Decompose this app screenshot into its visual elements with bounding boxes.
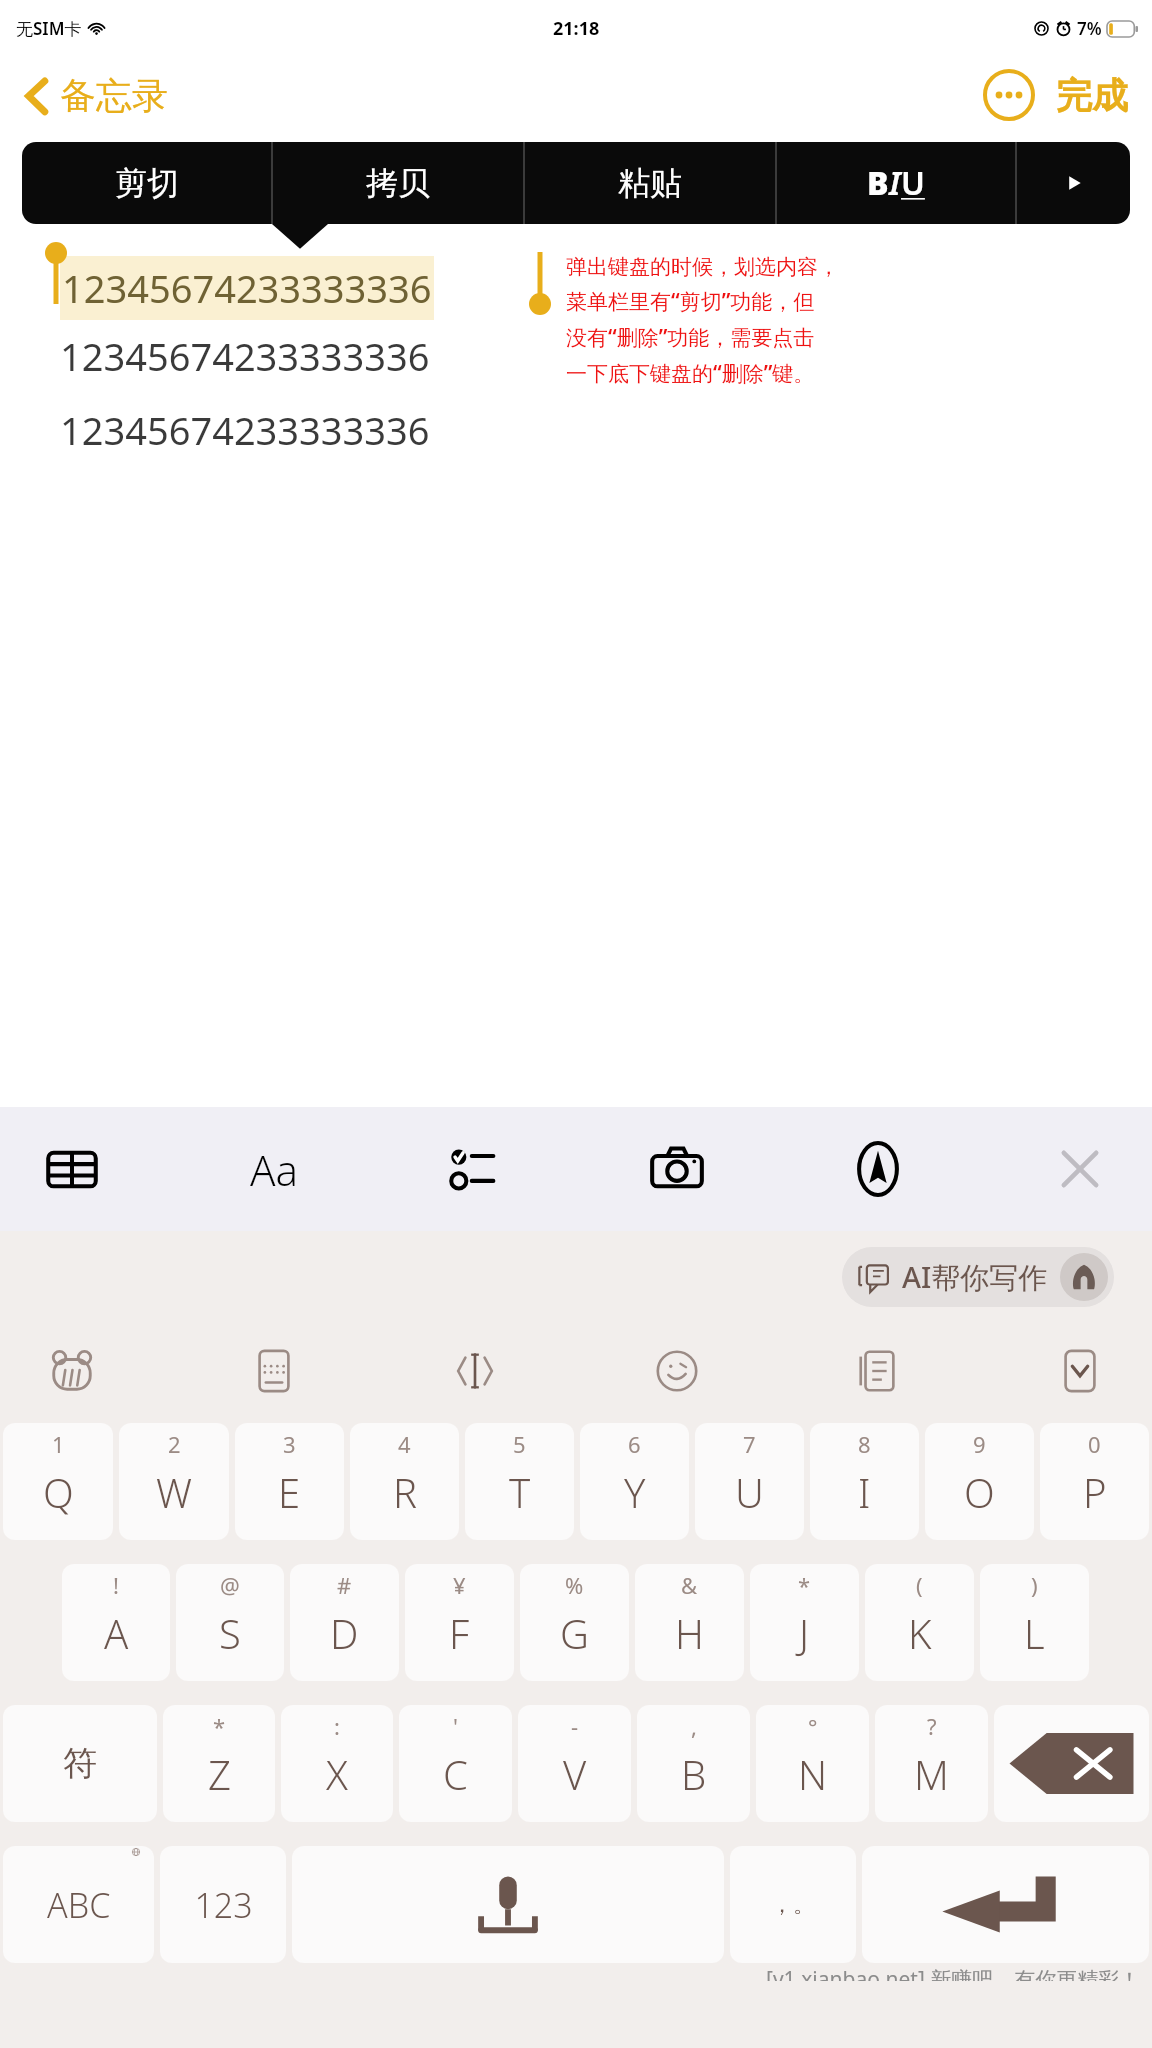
button[interactable]: Clipboard	[846, 1339, 910, 1403]
button[interactable]: Backspace	[994, 1705, 1149, 1822]
button[interactable]: More options	[980, 66, 1038, 124]
button[interactable]: %	[520, 1564, 629, 1681]
staticText: E	[278, 1465, 301, 1519]
staticText: 剪切	[115, 163, 179, 203]
button[interactable]: '	[399, 1705, 512, 1822]
staticText: 拷贝	[366, 163, 430, 203]
button[interactable]: ABC	[3, 1846, 154, 1963]
button[interactable]: More actions	[1017, 142, 1130, 224]
button[interactable]: 4	[350, 1423, 459, 1540]
staticText: 7	[743, 1429, 756, 1459]
staticText: U	[735, 1465, 764, 1519]
button[interactable]: 7	[695, 1423, 804, 1540]
staticText: 12345674233333336	[60, 330, 430, 382]
button[interactable]: 3	[235, 1423, 344, 1540]
staticText: *	[213, 1711, 226, 1741]
button[interactable]: Close	[1044, 1133, 1116, 1205]
button[interactable]: Camera	[641, 1133, 713, 1205]
button[interactable]: Move cursor	[443, 1339, 507, 1403]
staticText: 符	[63, 1742, 97, 1785]
staticText: 3	[283, 1429, 296, 1459]
staticText: 12345674233333336	[60, 404, 430, 456]
staticText: ABC	[47, 1882, 111, 1928]
button[interactable]: 符	[3, 1705, 157, 1822]
button[interactable]: Table	[36, 1133, 108, 1205]
button[interactable]: *	[163, 1705, 275, 1822]
staticText: %	[565, 1570, 584, 1600]
button[interactable]: ,	[637, 1705, 750, 1822]
staticText: B	[867, 161, 889, 205]
staticText: 弹出键盘的时候，划选内容，	[566, 254, 839, 280]
button[interactable]: ¥	[405, 1564, 514, 1681]
staticText: T	[509, 1465, 531, 1519]
button[interactable]: ?	[875, 1705, 988, 1822]
staticText: &	[681, 1570, 698, 1600]
staticText: *	[798, 1570, 811, 1600]
staticText: !	[113, 1570, 119, 1600]
staticText: @	[220, 1570, 240, 1600]
button[interactable]: 123	[160, 1846, 286, 1963]
button[interactable]: *	[750, 1564, 859, 1681]
button[interactable]: Input method	[40, 1339, 104, 1403]
button[interactable]: Keyboard settings	[242, 1339, 306, 1403]
button[interactable]: Space	[292, 1846, 724, 1963]
button[interactable]: 5	[465, 1423, 574, 1540]
button[interactable]: 0	[1040, 1423, 1149, 1540]
button[interactable]: 完成	[1052, 67, 1132, 124]
staticText: 12345674233333336	[62, 262, 432, 314]
staticText: 没有“删除”功能，需要点击	[566, 323, 815, 352]
button[interactable]: (	[865, 1564, 974, 1681]
button[interactable]: Emoji	[645, 1339, 709, 1403]
staticText: 菜单栏里有“剪切”功能，但	[566, 287, 815, 316]
button[interactable]: AI帮你写作	[842, 1247, 1114, 1307]
staticText: '	[453, 1711, 458, 1741]
staticText: O	[964, 1465, 995, 1519]
button[interactable]: )	[980, 1564, 1089, 1681]
staticText: R	[393, 1465, 417, 1519]
staticText: 8	[858, 1429, 871, 1459]
staticText: Q	[43, 1465, 74, 1519]
button[interactable]: 8	[810, 1423, 919, 1540]
button[interactable]: Hide keyboard	[1048, 1339, 1112, 1403]
button[interactable]: -	[518, 1705, 631, 1822]
staticText: D	[330, 1606, 359, 1660]
staticText: 0	[1088, 1429, 1101, 1459]
button[interactable]: 剪切	[22, 142, 271, 224]
button[interactable]: Checklist	[439, 1133, 511, 1205]
button[interactable]: B	[777, 142, 1015, 224]
staticText: ,	[691, 1711, 697, 1741]
staticText: AI帮你写作	[902, 1257, 1048, 1297]
staticText: U	[901, 161, 925, 205]
staticText: 123	[194, 1882, 253, 1928]
button[interactable]: °	[756, 1705, 869, 1822]
button[interactable]: 6	[580, 1423, 689, 1540]
staticText: 粘贴	[618, 163, 682, 203]
button[interactable]: :	[281, 1705, 393, 1822]
staticText: [v1.xianbao.net] 新赚吧，有你更精彩！	[766, 1965, 1141, 1981]
button[interactable]: 2	[119, 1423, 229, 1540]
button[interactable]: ，。	[730, 1846, 856, 1963]
button[interactable]: 1	[3, 1423, 113, 1540]
button[interactable]: 拷贝	[273, 142, 523, 224]
button[interactable]: &	[635, 1564, 744, 1681]
staticText: 5	[513, 1429, 526, 1459]
staticText: ，。	[771, 1891, 815, 1919]
button[interactable]: 备忘录	[20, 73, 172, 118]
staticText: 6	[628, 1429, 641, 1459]
staticText: 4	[398, 1429, 411, 1459]
button[interactable]: Markup	[842, 1133, 914, 1205]
staticText: 无SIM卡	[16, 17, 82, 40]
button[interactable]: Aa	[238, 1133, 310, 1205]
button[interactable]: @	[176, 1564, 284, 1681]
button[interactable]: Return	[862, 1846, 1149, 1963]
button[interactable]: 粘贴	[525, 142, 775, 224]
staticText: K	[908, 1606, 932, 1660]
button[interactable]: !	[62, 1564, 170, 1681]
staticText: V	[563, 1747, 587, 1801]
button[interactable]: #	[290, 1564, 399, 1681]
staticText: H	[675, 1606, 704, 1660]
staticText: J	[799, 1606, 810, 1660]
staticText: G	[560, 1606, 589, 1660]
staticText: 完成	[1056, 73, 1128, 118]
button[interactable]: 9	[925, 1423, 1034, 1540]
